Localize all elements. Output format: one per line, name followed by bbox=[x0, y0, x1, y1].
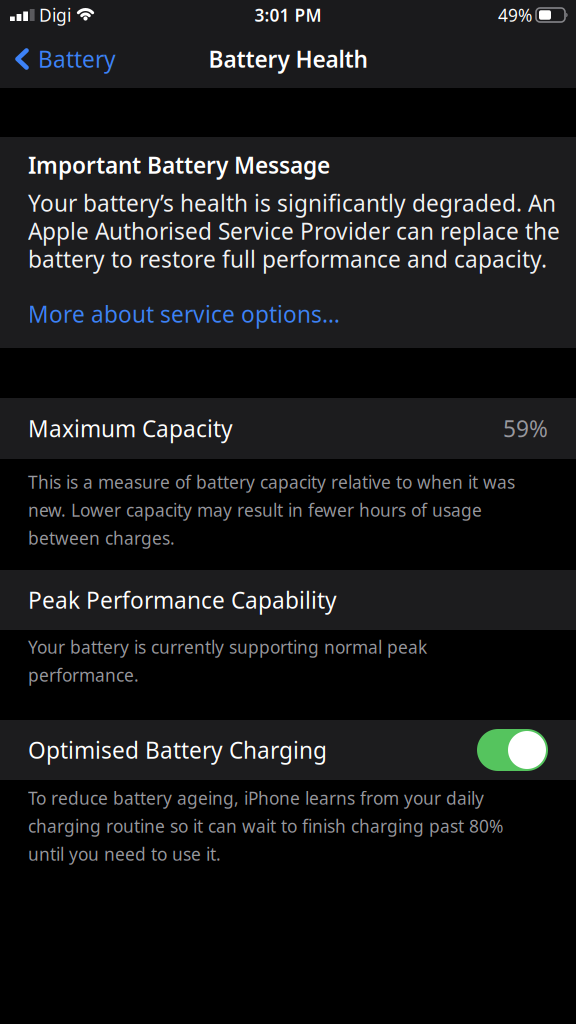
staticText: Maximum Capacity bbox=[28, 413, 233, 443]
staticText: charging routine so it can wait to finis… bbox=[28, 814, 503, 837]
staticText: Apple Authorised Service Provider can re… bbox=[28, 216, 560, 246]
staticText: 3:01 PM bbox=[254, 3, 321, 26]
staticText: Important Battery Message bbox=[28, 150, 330, 180]
staticText: Digi bbox=[39, 3, 71, 26]
staticText: Battery bbox=[38, 44, 116, 74]
staticText: until you need to use it. bbox=[28, 842, 221, 865]
button[interactable]: More about service options… bbox=[28, 299, 340, 329]
staticText: Battery Health bbox=[208, 44, 367, 74]
staticText: This is a measure of battery capacity re… bbox=[28, 470, 515, 493]
staticText: To reduce battery ageing, iPhone learns … bbox=[28, 786, 484, 809]
staticText: More about service options… bbox=[28, 299, 340, 329]
staticText: between charges. bbox=[28, 526, 175, 549]
staticText: Your battery’s health is significantly d… bbox=[28, 188, 556, 218]
staticText: Optimised Battery Charging bbox=[28, 735, 327, 765]
staticText: performance. bbox=[28, 663, 139, 686]
staticText: battery to restore full performance and … bbox=[28, 244, 547, 274]
staticText: 59% bbox=[503, 413, 548, 443]
button[interactable]: Optimised Battery Charging, on bbox=[477, 729, 548, 771]
staticText: Your battery is currently supporting nor… bbox=[28, 635, 427, 658]
button[interactable]: Back to Battery bbox=[0, 44, 116, 74]
staticText: 49% bbox=[498, 3, 532, 26]
staticText: Peak Performance Capability bbox=[28, 585, 337, 615]
staticText: new. Lower capacity may result in fewer … bbox=[28, 498, 482, 521]
